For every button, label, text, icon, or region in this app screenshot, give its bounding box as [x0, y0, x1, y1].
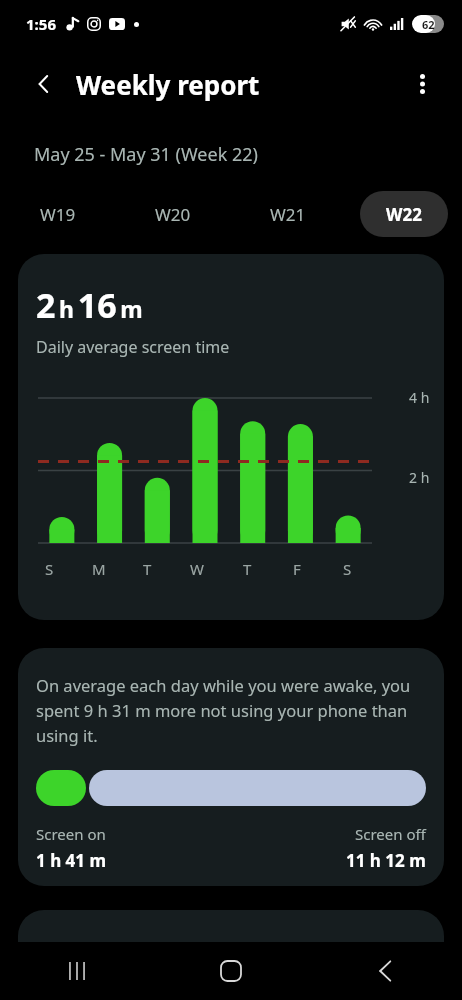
button[interactable]: Home [154, 942, 308, 1000]
staticText: May 25 - May 31 (Week 22) [34, 142, 258, 167]
button[interactable]: On average each day while you were awake… [18, 648, 444, 886]
staticText: 4 h [409, 388, 430, 407]
staticText: 2 h 16 m [36, 282, 143, 328]
staticText: Weekly report [76, 67, 260, 102]
button[interactable]: W22 [360, 191, 448, 237]
staticText: W22 [386, 203, 422, 226]
staticText: Screen on [36, 824, 106, 844]
staticText: 1:56 [26, 14, 56, 34]
button[interactable]: More options [400, 62, 444, 106]
staticText: T [243, 559, 252, 579]
staticText: Daily average screen time [36, 336, 230, 358]
button[interactable]: W21 [230, 191, 346, 237]
staticText: T [143, 559, 152, 579]
staticText: On average each day while you were awake… [36, 674, 426, 746]
staticText: S [343, 559, 352, 579]
staticText: S [45, 559, 54, 579]
button[interactable]: W20 [115, 191, 230, 237]
button[interactable]: W19 [0, 191, 115, 237]
staticText: W20 [155, 203, 191, 226]
staticText: W21 [270, 203, 306, 226]
button[interactable]: Back [22, 62, 66, 106]
staticText: 11 h 12 m [346, 849, 426, 872]
staticText: W [190, 559, 204, 579]
staticText: M [92, 559, 106, 579]
staticText: F [293, 559, 301, 579]
staticText: W19 [40, 203, 76, 226]
button[interactable] [18, 910, 444, 970]
button[interactable]: Back [308, 942, 462, 1000]
staticText: 2 h [409, 468, 430, 487]
button[interactable]: 2 h 16 m [18, 254, 444, 620]
button[interactable]: Recent apps [0, 942, 154, 1000]
staticText: Screen off [355, 824, 426, 844]
staticText: 62 [422, 17, 435, 32]
staticText: 1 h 41 m [36, 849, 107, 872]
